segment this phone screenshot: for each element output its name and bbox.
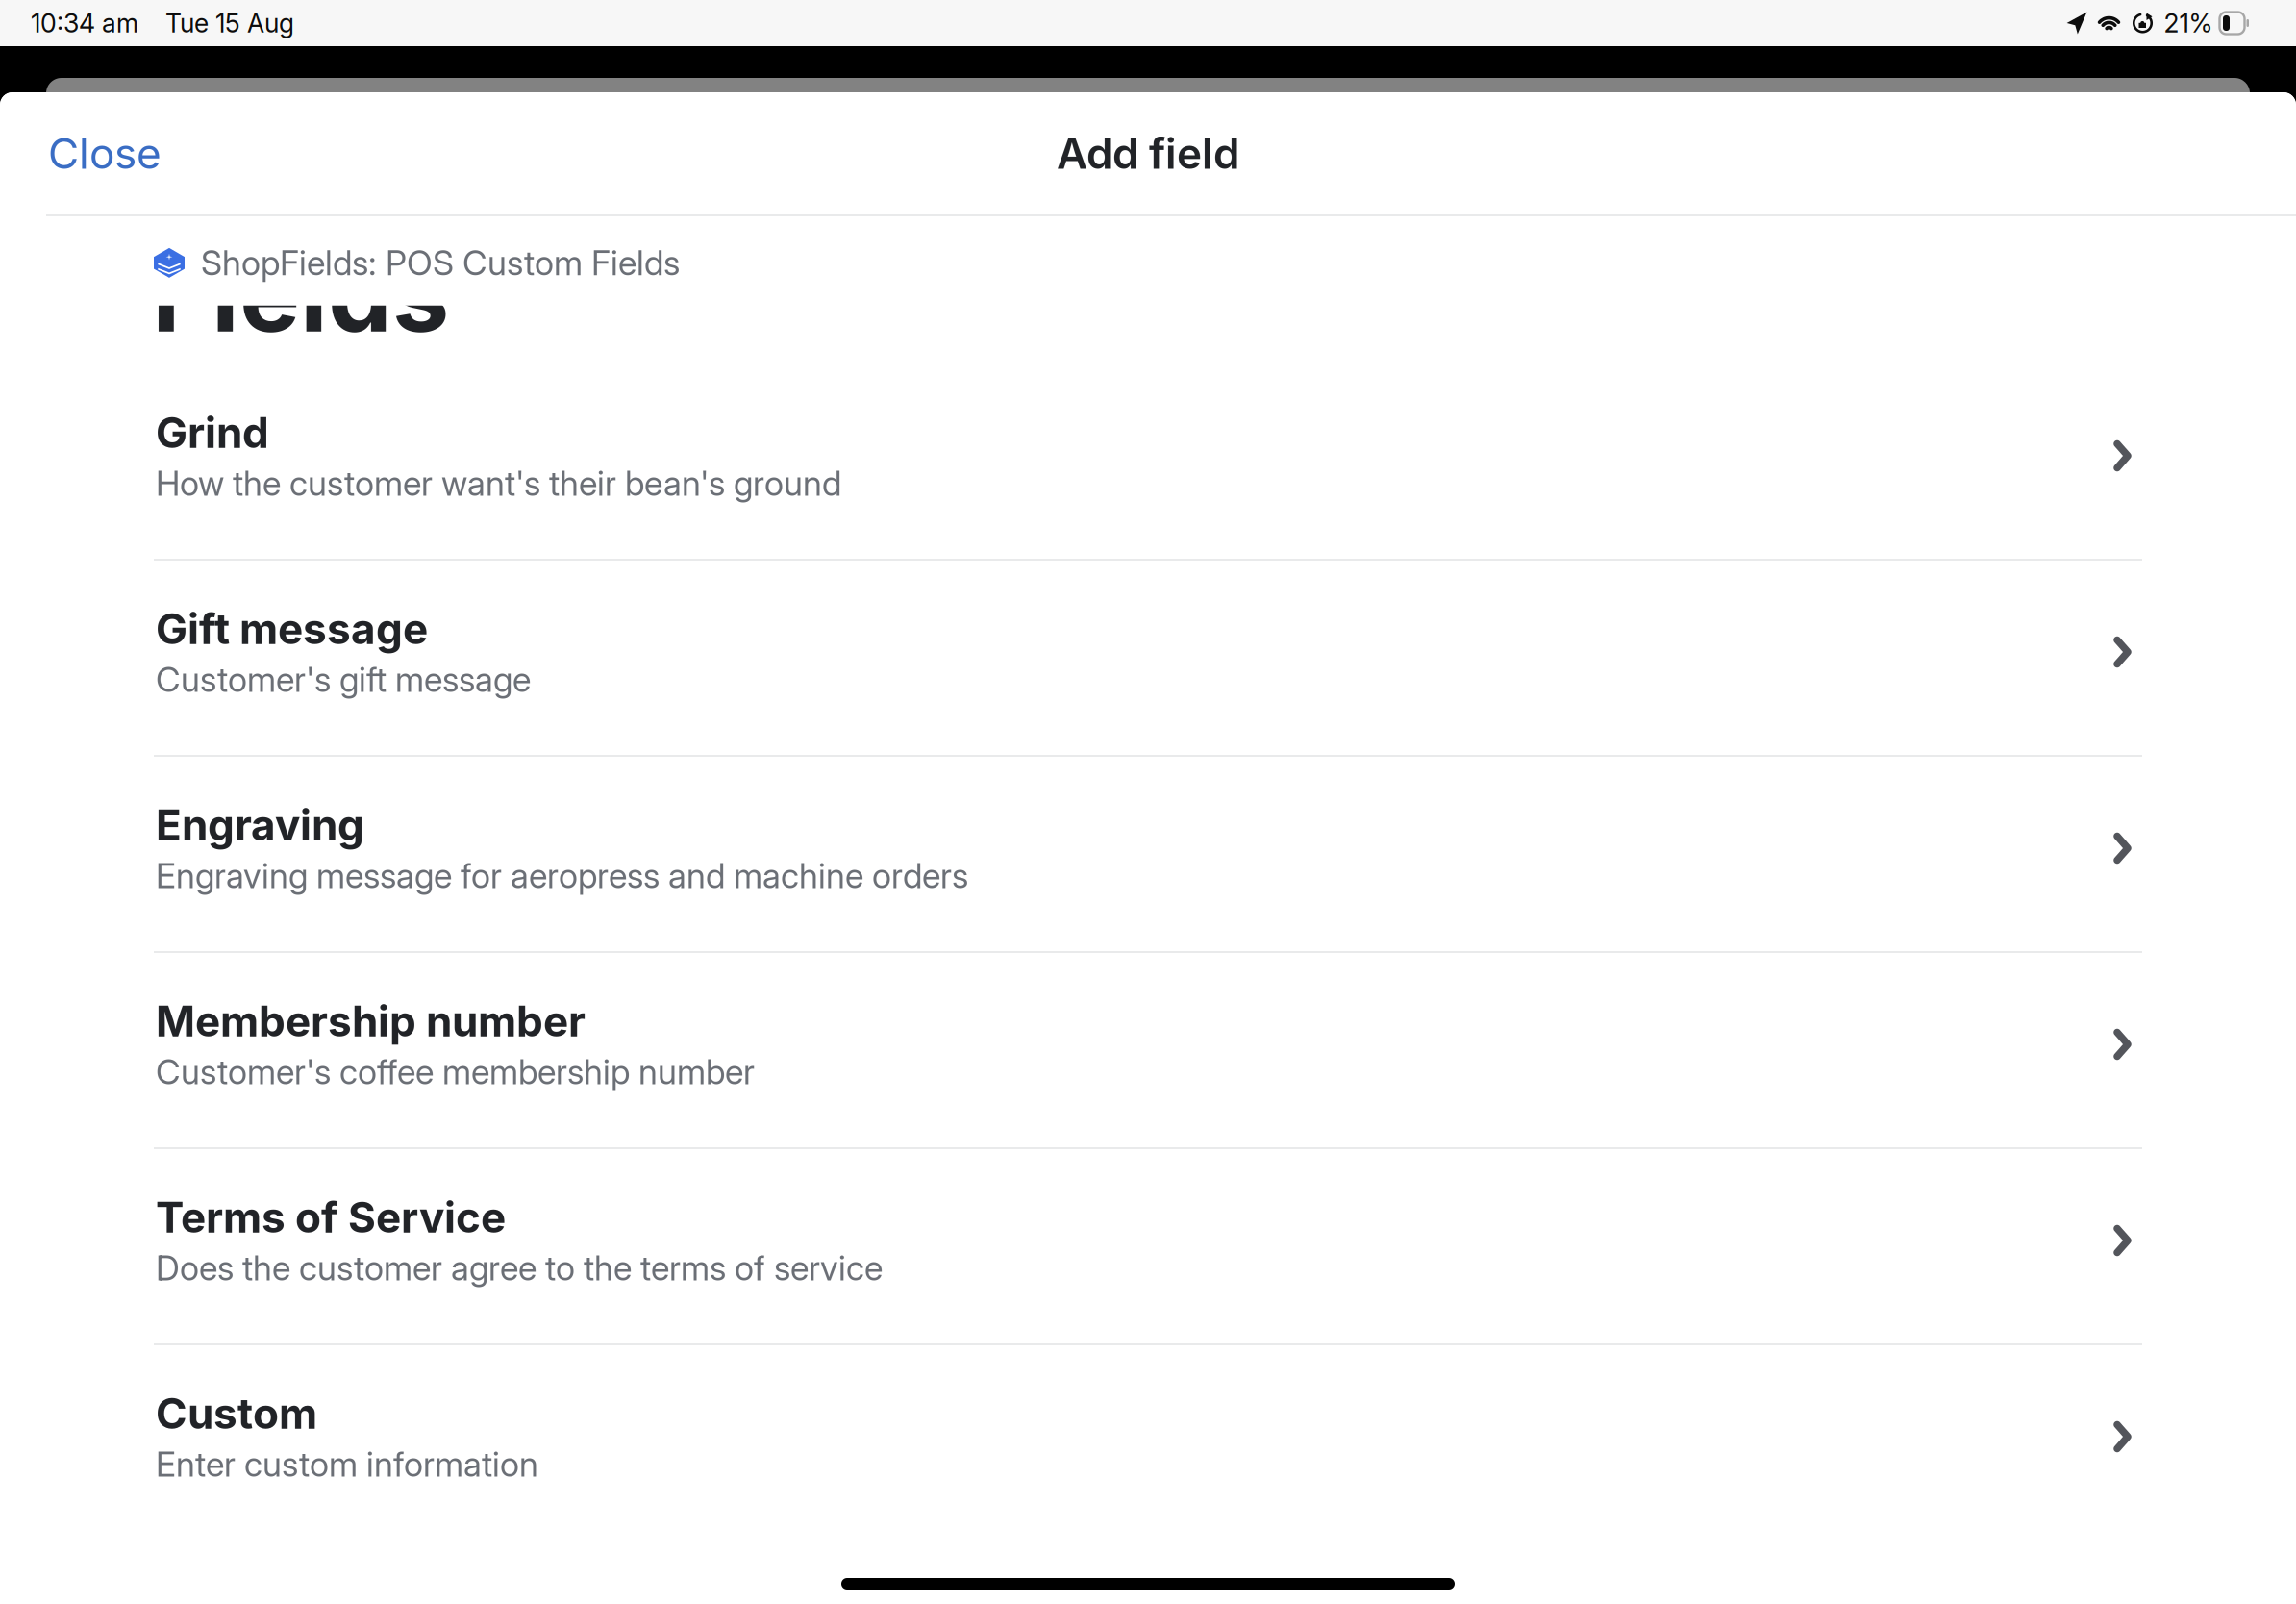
staticText: Enter custom information — [156, 1444, 538, 1485]
button[interactable]: Gift message — [0, 561, 2296, 755]
staticText: Customer's gift message — [156, 659, 531, 700]
staticText: Engraving — [156, 799, 364, 850]
staticText: Gift message — [156, 603, 428, 654]
button[interactable]: Close — [0, 105, 187, 202]
staticText: Grind — [156, 407, 269, 458]
staticText: How the customer want's their bean's gro… — [156, 463, 841, 504]
staticText: ShopFields: POS Custom Fields — [201, 242, 680, 283]
button[interactable]: Grind — [0, 364, 2296, 559]
staticText: Engraving message for aeropress and mach… — [156, 855, 968, 896]
staticText: Customer's coffee membership number — [156, 1051, 755, 1092]
staticText: Add field — [1057, 128, 1239, 179]
staticText: 10:34 am — [31, 8, 138, 39]
staticText: Tue 15 Aug — [165, 8, 294, 39]
staticText: Custom — [156, 1388, 317, 1439]
button[interactable]: Engraving — [0, 757, 2296, 951]
button[interactable]: ShopFields: POS Custom Fields — [0, 242, 2296, 283]
staticText: Fields — [152, 233, 449, 356]
staticText: 21% — [2164, 8, 2213, 39]
button[interactable]: Membership number — [0, 953, 2296, 1147]
staticText: Membership number — [156, 995, 586, 1046]
staticText: Close — [48, 128, 162, 179]
staticText: Terms of Service — [156, 1191, 506, 1243]
button[interactable]: Terms of Service — [0, 1149, 2296, 1343]
button[interactable]: Custom — [0, 1345, 2296, 1540]
staticText: Does the customer agree to the terms of … — [156, 1247, 883, 1289]
